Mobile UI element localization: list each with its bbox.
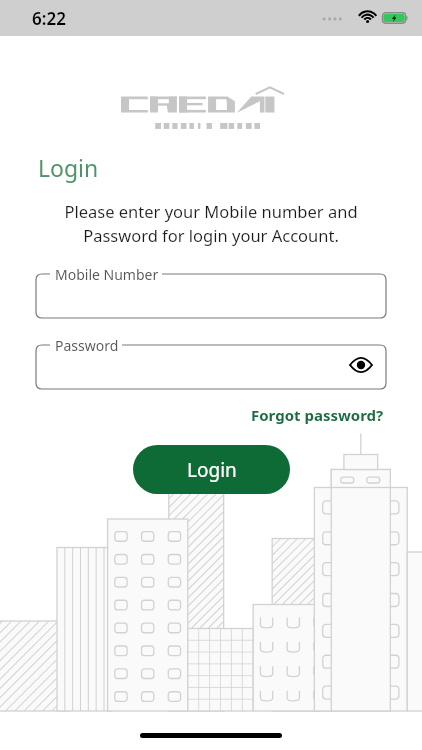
button[interactable]: Login — [133, 445, 290, 494]
staticText: Please enter your Mobile number and Pass… — [26, 200, 396, 247]
staticText: Mobile Number — [55, 265, 159, 284]
staticText: Login — [38, 152, 99, 183]
button[interactable] — [36, 345, 386, 389]
staticText: Login — [187, 457, 237, 483]
staticText: 6:22 — [32, 7, 66, 30]
button[interactable]: Show password — [346, 350, 376, 380]
button[interactable]: Forgot password? — [249, 401, 386, 429]
staticText: Forgot password? — [251, 405, 384, 425]
staticText: Password — [55, 336, 119, 355]
button[interactable] — [36, 274, 386, 318]
